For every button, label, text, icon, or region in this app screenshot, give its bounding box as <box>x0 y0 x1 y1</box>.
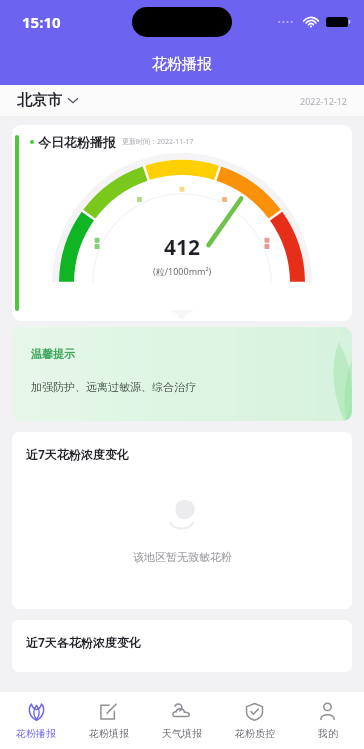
staticText: (粒/1000mm²) <box>153 265 212 277</box>
staticText: 2022-12-12 <box>300 95 347 107</box>
staticText: 近7天花粉浓度变化 <box>26 446 129 462</box>
staticText: 北京市 <box>17 91 62 110</box>
staticText: 天气填报 <box>162 727 202 740</box>
staticText: 花粉填报 <box>89 727 129 740</box>
button[interactable]: 花粉播报 <box>0 692 72 749</box>
staticText: 该地区暂无致敏花粉 <box>133 550 232 564</box>
staticText: 更新时间：2022-11-17 <box>122 137 194 147</box>
button[interactable]: 花粉质控 <box>218 692 291 749</box>
staticText: 412 <box>164 233 201 262</box>
staticText: 今日花粉播报 <box>38 134 116 150</box>
button[interactable]: 天气填报 <box>145 692 218 749</box>
staticText: 花粉质控 <box>235 727 275 740</box>
staticText: 近7天各花粉浓度变化 <box>26 634 141 650</box>
button[interactable]: 花粉填报 <box>72 692 145 749</box>
staticText: 15:10 <box>22 12 61 32</box>
button[interactable]: 北京市 <box>0 85 364 116</box>
staticText: 花粉播报 <box>16 727 56 740</box>
staticText: 加强防护、远离过敏源、综合治疗 <box>31 380 196 394</box>
button[interactable]: 我的 <box>291 692 364 749</box>
button[interactable]: 近7天各花粉浓度变化 <box>12 620 352 672</box>
staticText: 花粉播报 <box>152 55 212 74</box>
button[interactable]: 今日花粉播报 <box>12 125 352 321</box>
staticText: 温馨提示 <box>31 347 75 361</box>
staticText: 我的 <box>318 727 338 740</box>
button[interactable]: 温馨提示 <box>12 327 352 421</box>
button[interactable]: 近7天花粉浓度变化 <box>12 432 352 609</box>
